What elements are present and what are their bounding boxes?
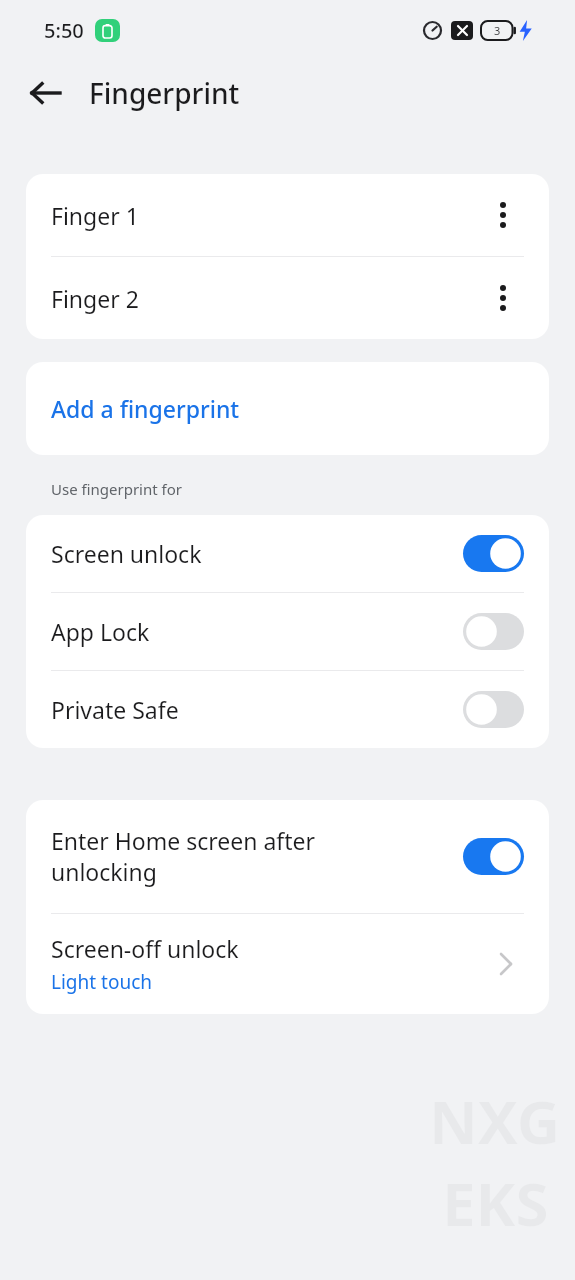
button[interactable]: Add a fingerprint	[26, 362, 549, 455]
staticText: Use fingerprint for	[51, 479, 182, 499]
staticText: App Lock	[51, 616, 463, 647]
button[interactable]: More options	[482, 277, 524, 319]
staticText: Fingerprint	[89, 74, 240, 112]
staticText: EKS	[442, 1162, 549, 1244]
staticText: Add a fingerprint	[51, 393, 240, 424]
staticText: Screen unlock	[51, 538, 463, 569]
staticText: Finger 1	[51, 200, 482, 231]
staticText: Light touch	[51, 969, 153, 995]
staticText: Finger 2	[51, 283, 482, 314]
staticText: 5:50	[44, 17, 84, 44]
staticText: Enter Home screen after unlocking	[51, 825, 453, 888]
button[interactable]: Screen unlock	[26, 515, 549, 592]
button[interactable]: Screen-off unlock	[26, 914, 549, 1014]
button[interactable]: More options	[482, 194, 524, 236]
staticText: Private Safe	[51, 694, 463, 725]
button[interactable]: Finger 1	[26, 174, 549, 256]
button[interactable]: App Lock	[26, 593, 549, 670]
button[interactable]: Private Safe	[26, 671, 549, 748]
button[interactable]: Back	[22, 70, 68, 116]
staticText: NXG	[429, 1080, 561, 1162]
button[interactable]: Enter Home screen after unlocking	[26, 800, 549, 913]
staticText: 3	[494, 23, 501, 38]
button[interactable]: Finger 2	[26, 257, 549, 339]
staticText: Screen-off unlock	[51, 933, 239, 964]
other: Open screen-off unlock	[488, 946, 524, 982]
